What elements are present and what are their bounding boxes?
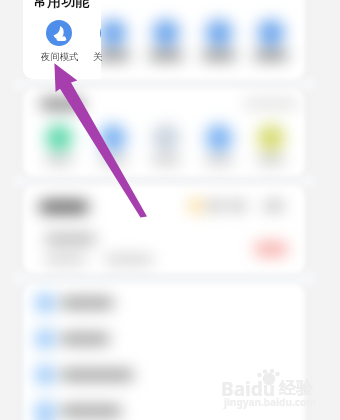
staticText: 经验 <box>279 378 313 399</box>
button[interactable]: 夜间模式 <box>36 19 83 65</box>
staticText: jingyan.baidu.com <box>224 395 316 409</box>
staticText: 夜间模式 <box>36 51 83 65</box>
staticText: 常用功能 <box>33 0 89 11</box>
staticText: Baidu <box>221 376 276 402</box>
staticText: 关 <box>93 51 103 63</box>
